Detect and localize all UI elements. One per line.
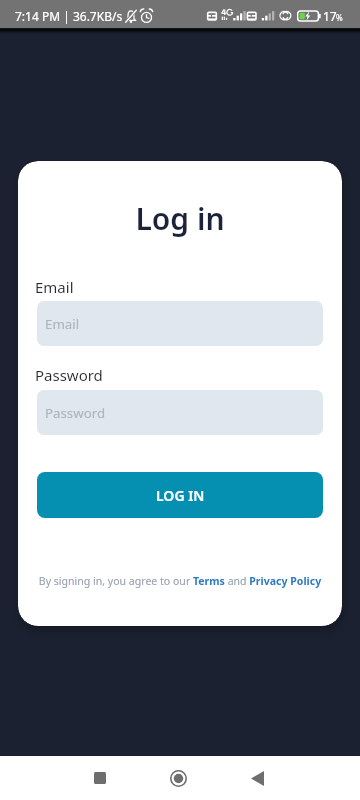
button[interactable]: Password [37,390,323,435]
button[interactable]: Home [148,756,208,800]
staticText: 7:14 PM | 36.7KB/s [15,8,123,24]
button[interactable]: Email [37,301,323,346]
button[interactable]: LOG IN [37,472,323,518]
staticText: Password [45,404,106,422]
button[interactable]: Recent apps [70,756,130,800]
staticText: Email [45,315,80,333]
staticText: 17 [323,8,337,24]
staticText: LOG IN [156,486,205,505]
staticText: Password [35,365,103,385]
staticText: % [336,12,343,23]
staticText: Email [35,277,74,297]
staticText: By signing in, you agree to our Terms an… [26,574,334,588]
staticText: Log in [18,198,342,239]
button[interactable]: Back [227,756,287,800]
